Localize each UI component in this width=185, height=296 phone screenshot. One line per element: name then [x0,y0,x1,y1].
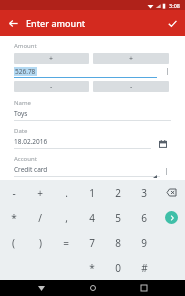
staticText: 3:08 [169,2,180,9]
button[interactable]: * [0,205,27,230]
button[interactable]: 6 [131,205,157,230]
staticText: + [49,54,54,64]
staticText: + [37,186,43,200]
button[interactable]: Pick date [157,138,168,149]
staticText: - [12,186,16,200]
button[interactable]: Name [14,99,171,121]
button[interactable]: + [27,180,53,205]
button[interactable]: 7 [79,230,105,255]
staticText: Enter amount [26,17,86,29]
button[interactable]: 5 [105,205,131,230]
button[interactable]: 4 [79,205,105,230]
staticText: 9 [141,236,147,250]
staticText: * [11,211,17,225]
staticText: 1 [89,186,95,200]
button[interactable]: 2 [105,180,131,205]
button[interactable]: - [0,180,27,205]
button[interactable]: 9 [131,230,157,255]
button[interactable]: Decrease [93,81,169,92]
button[interactable]: , [53,205,79,230]
button[interactable]: Home [82,280,104,296]
staticText: 8 [115,236,121,250]
button[interactable]: 3 [131,180,157,205]
staticText: Account [14,155,37,163]
button[interactable]: * [79,255,105,280]
staticText: . [65,186,68,200]
button[interactable]: Backspace [157,180,185,205]
staticText: + [129,54,134,64]
button[interactable]: Increase [14,53,89,64]
button[interactable]: Recent apps [133,280,155,296]
button[interactable]: 526.78 [14,67,169,78]
staticText: - [50,82,53,92]
staticText: # [141,261,148,275]
button[interactable]: 0 [105,255,131,280]
button[interactable]: Back [0,10,26,36]
button[interactable]: Increase [93,53,169,64]
staticText: 2 [115,186,121,200]
button[interactable]: # [131,255,157,280]
staticText: ) [39,236,42,250]
staticText: 526.78 [15,67,36,76]
button[interactable]: Enter [157,205,185,230]
staticText: 5 [115,211,121,225]
staticText: 7 [89,236,95,250]
staticText: Name [14,99,31,107]
staticText: 4 [89,211,95,225]
button[interactable]: Decrease [14,81,89,92]
staticText: * [89,261,95,275]
staticText: / [38,211,42,225]
staticText: 0 [115,261,121,275]
staticText: 18.02.2016 [14,137,48,146]
button[interactable]: / [27,205,53,230]
staticText: Amount [14,42,37,50]
button[interactable]: Date [14,127,171,149]
staticText: Toys [14,109,28,118]
button[interactable]: Hide keyboard [30,280,52,296]
staticText: Credit card [14,165,48,174]
staticText: = [63,236,69,250]
staticText: ( [12,236,15,250]
staticText: Date [14,127,28,135]
button[interactable]: ( [0,230,27,255]
button[interactable]: Confirm [159,10,185,36]
button[interactable]: . [53,180,79,205]
button[interactable]: 1 [79,180,105,205]
button[interactable]: 8 [105,230,131,255]
staticText: 3 [141,186,147,200]
staticText: - [130,82,133,92]
button[interactable]: ) [27,230,53,255]
button[interactable]: Account [14,155,171,180]
button[interactable]: = [53,230,79,255]
staticText: , [65,211,68,225]
staticText: 6 [141,211,147,225]
